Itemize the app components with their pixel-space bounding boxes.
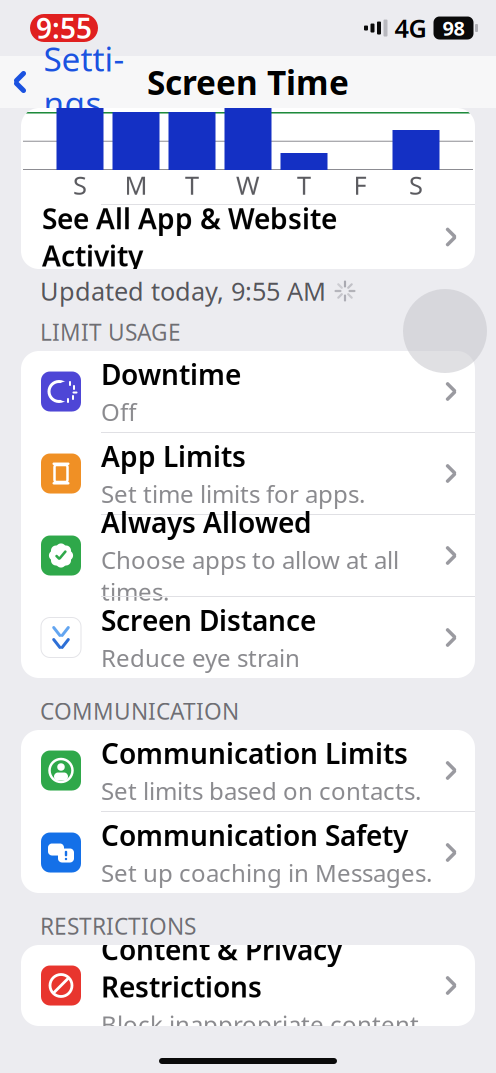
staticText: Set limits based on contacts. <box>101 775 421 807</box>
staticText: Always Allowed <box>101 503 312 541</box>
staticText: Screen Time <box>147 60 349 104</box>
staticText: Updated today, 9:55 AM <box>40 274 326 308</box>
staticText: 98 <box>442 15 464 41</box>
staticText: LIMIT USAGE <box>40 317 181 347</box>
staticText: App Limits <box>101 437 246 475</box>
button[interactable]: App Limits <box>21 433 475 515</box>
staticText: Reduce eye strain <box>101 642 300 674</box>
button[interactable]: Content & Privacy Restrictions <box>21 945 475 1026</box>
staticText: F <box>353 168 366 202</box>
button[interactable]: Downtime <box>21 351 475 433</box>
staticText: Content & Privacy Restrictions <box>101 931 342 1005</box>
staticText: 9:55 <box>36 9 92 47</box>
staticText: 4G <box>394 11 426 45</box>
staticText: Off <box>101 396 137 428</box>
staticText: Set up coaching in Messages. <box>101 857 432 889</box>
staticText: Choose apps to allow at all times. <box>101 544 399 607</box>
staticText: Communication Limits <box>101 734 408 772</box>
button[interactable]: Always Allowed <box>21 515 475 597</box>
staticText: See All App & Website Activity <box>42 200 337 274</box>
staticText: RESTRICTIONS <box>40 911 196 941</box>
staticText: Settings <box>43 36 124 125</box>
staticText: T <box>185 168 199 202</box>
staticText: Set time limits for apps. <box>101 478 365 510</box>
staticText: Block inappropriate content. <box>101 1008 425 1040</box>
staticText: M <box>124 168 147 202</box>
staticText: Screen Distance <box>101 601 316 639</box>
staticText: W <box>236 168 260 202</box>
button[interactable]: See All App & Website Activity <box>21 205 475 269</box>
staticText: S <box>73 168 87 202</box>
staticText: Downtime <box>101 355 241 393</box>
button[interactable]: Settings <box>0 30 134 133</box>
button[interactable]: Communication Safety <box>21 812 475 893</box>
staticText: COMMUNICATION <box>40 696 239 726</box>
staticText: T <box>297 168 311 202</box>
staticText: S <box>409 168 423 202</box>
button[interactable]: Communication Limits <box>21 730 475 812</box>
staticText: Communication Safety <box>101 816 408 854</box>
button[interactable]: Screen Distance <box>21 597 475 678</box>
